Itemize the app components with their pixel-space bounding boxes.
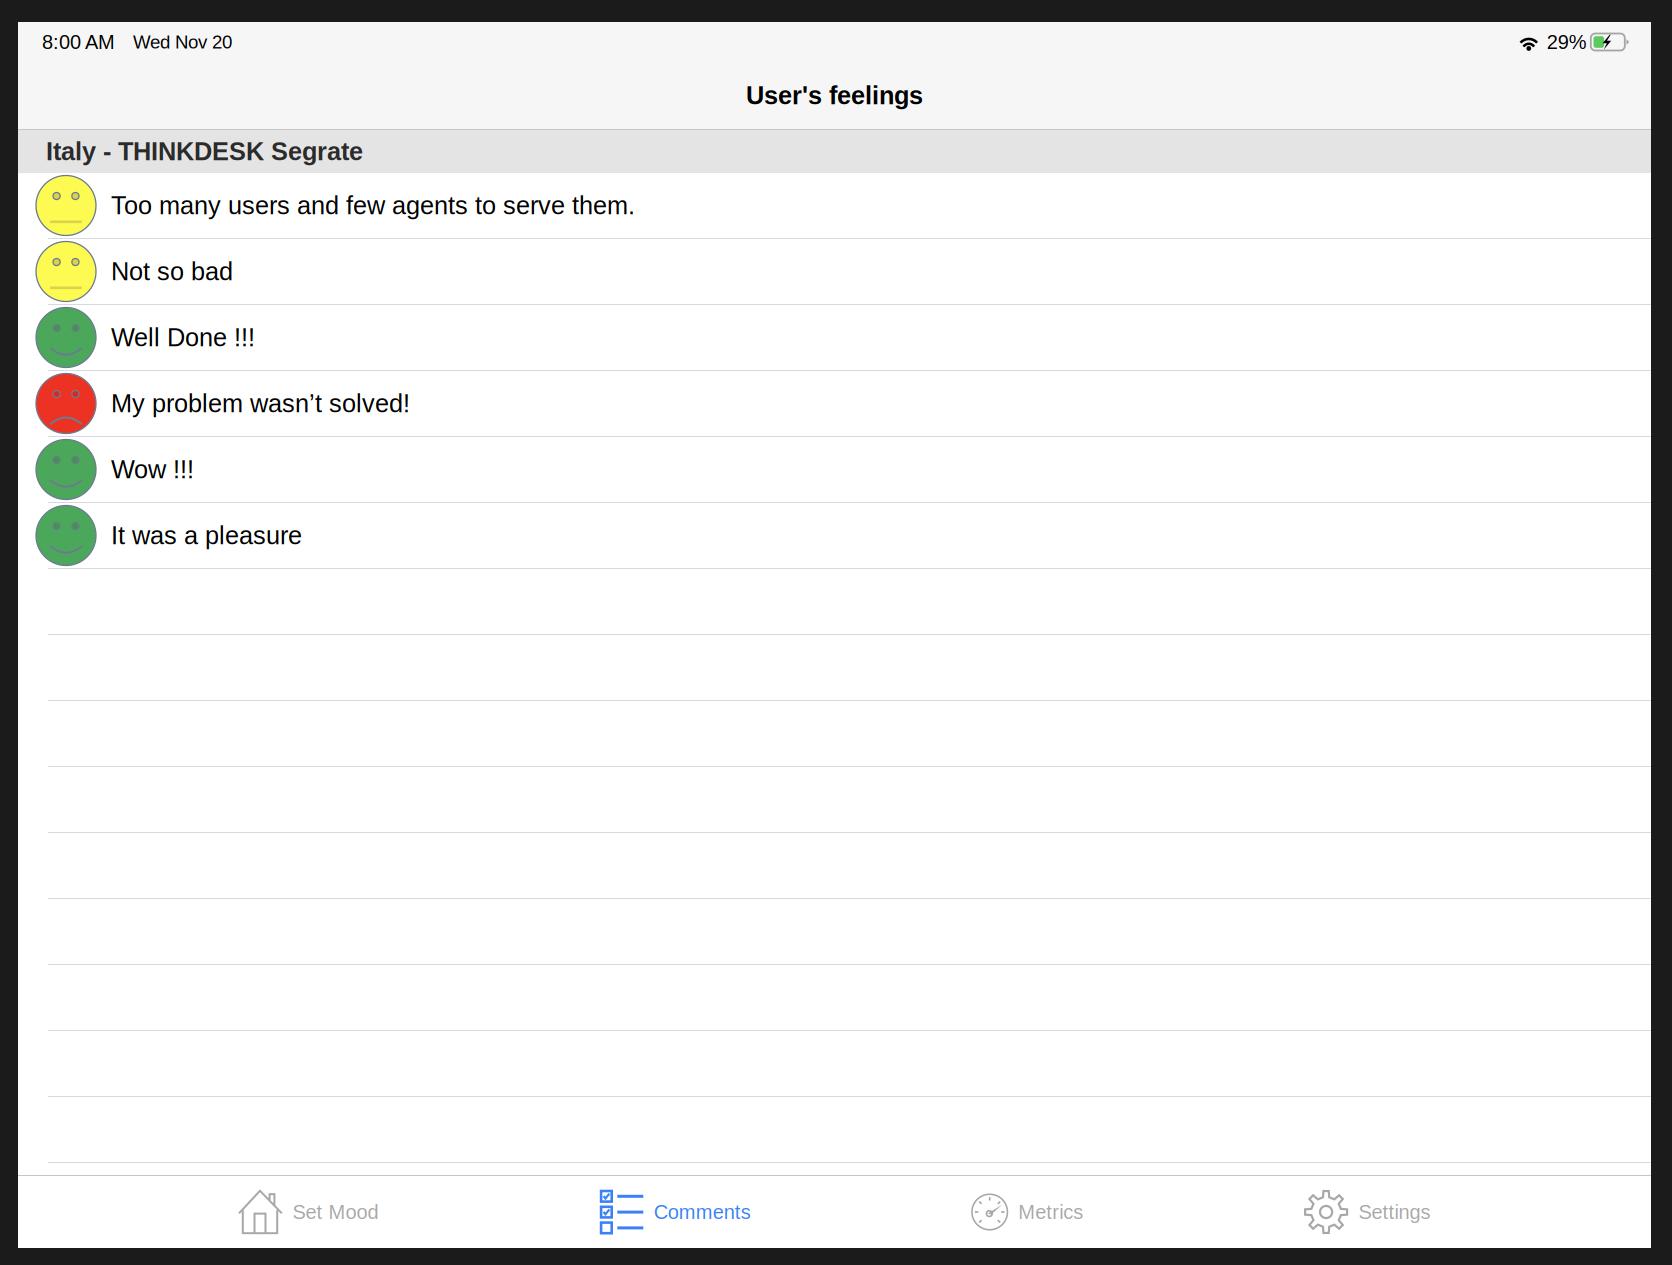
staticText: Not so bad <box>111 257 233 286</box>
staticText: 29% <box>1547 31 1587 53</box>
button[interactable]: My problem wasn’t solved! <box>18 371 1651 437</box>
button[interactable]: Settings <box>1304 1176 1431 1248</box>
staticText: My problem wasn’t solved! <box>111 389 410 418</box>
staticText: Italy - THINKDESK Segrate <box>46 137 363 166</box>
staticText: 8:00 AM <box>42 31 115 53</box>
button[interactable]: Wow !!! <box>18 437 1651 503</box>
staticText: Metrics <box>1018 1201 1083 1223</box>
staticText: Wow !!! <box>111 455 194 484</box>
button[interactable]: Comments <box>599 1176 751 1248</box>
staticText: Comments <box>654 1201 751 1223</box>
staticText: Well Done !!! <box>111 323 255 352</box>
staticText: Settings <box>1359 1201 1431 1223</box>
button[interactable]: Too many users and few agents to serve t… <box>18 173 1651 239</box>
staticText: It was a pleasure <box>111 521 302 550</box>
button[interactable]: Set Mood <box>238 1176 378 1248</box>
staticText: Too many users and few agents to serve t… <box>111 191 635 220</box>
button[interactable]: Metrics <box>971 1176 1083 1248</box>
button[interactable]: Not so bad <box>18 239 1651 305</box>
button[interactable]: Well Done !!! <box>18 305 1651 371</box>
staticText: Wed Nov 20 <box>133 32 232 52</box>
button[interactable]: It was a pleasure <box>18 503 1651 569</box>
staticText: Set Mood <box>292 1201 378 1223</box>
staticText: User's feelings <box>746 81 923 110</box>
